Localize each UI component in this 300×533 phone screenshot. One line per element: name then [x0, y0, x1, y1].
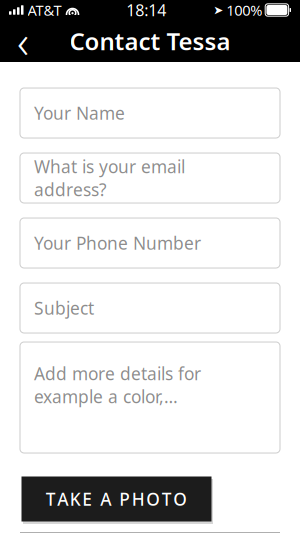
staticText: T — [46, 487, 56, 510]
staticText: A — [100, 487, 111, 510]
staticText: 100% — [226, 0, 262, 20]
button[interactable]: Add more details for example a color,… — [20, 342, 280, 453]
staticText: ‹ — [17, 11, 29, 71]
staticText: H — [132, 487, 145, 510]
staticText: Your Phone Number — [34, 231, 201, 254]
button[interactable]: Subject — [20, 283, 280, 333]
staticText: O — [146, 487, 160, 510]
staticText: E — [82, 487, 92, 510]
staticText: P — [119, 487, 130, 510]
staticText: 18:14 — [126, 0, 166, 21]
staticText: A — [57, 487, 68, 510]
button[interactable]: Back — [0, 20, 46, 62]
button[interactable]: Your Phone Number — [20, 218, 280, 268]
staticText: K — [70, 487, 81, 510]
staticText: ➤ — [213, 3, 223, 17]
button[interactable]: T — [20, 475, 213, 523]
button[interactable]: What is your email address? — [20, 153, 280, 203]
staticText: O — [173, 487, 187, 510]
staticText: Contact Tessa — [69, 25, 230, 57]
staticText: Your Name — [34, 101, 125, 124]
staticText: Add more details for example a color,… — [34, 362, 201, 408]
button[interactable]: Your Name — [20, 88, 280, 138]
staticText: AT&T — [27, 0, 61, 20]
staticText: What is your email address? — [34, 155, 185, 201]
staticText: Subject — [34, 296, 94, 319]
staticText: T — [162, 487, 172, 510]
